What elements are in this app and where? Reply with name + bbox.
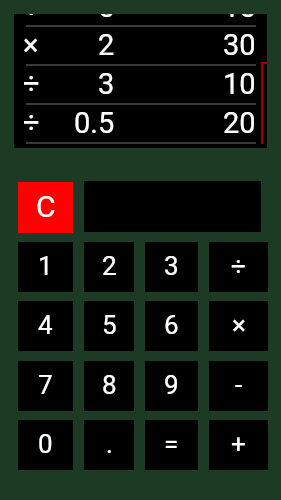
staticText: = bbox=[164, 429, 179, 459]
staticText: + bbox=[23, 14, 40, 24]
staticText: 0.5 bbox=[74, 106, 115, 140]
staticText: 30 bbox=[223, 28, 256, 62]
staticText: 5 bbox=[102, 310, 117, 340]
staticText: . bbox=[106, 429, 113, 459]
button[interactable]: 3 bbox=[145, 242, 198, 292]
button[interactable]: 5 bbox=[84, 301, 134, 351]
staticText: C bbox=[36, 189, 56, 224]
button[interactable]: 4 bbox=[18, 301, 73, 351]
staticText: 2 bbox=[98, 28, 115, 62]
button[interactable]: + bbox=[209, 420, 268, 470]
button[interactable]: 9 bbox=[145, 361, 198, 411]
button[interactable]: 2 bbox=[84, 242, 134, 292]
staticText: 15 bbox=[223, 14, 256, 24]
staticText: 2 bbox=[102, 251, 117, 281]
button[interactable]: - bbox=[209, 361, 268, 411]
staticText: ÷ bbox=[23, 67, 40, 101]
button[interactable]: 6 bbox=[145, 301, 198, 351]
button[interactable]: ÷ bbox=[209, 242, 268, 292]
button[interactable]: 8 bbox=[84, 361, 134, 411]
staticText: 20 bbox=[223, 106, 256, 140]
staticText: 3 bbox=[164, 251, 179, 281]
staticText: - bbox=[235, 370, 243, 400]
button[interactable]: = bbox=[145, 420, 198, 470]
button[interactable]: 7 bbox=[18, 361, 73, 411]
staticText: ÷ bbox=[23, 106, 40, 140]
staticText: 8 bbox=[102, 370, 117, 400]
staticText: ÷ bbox=[231, 251, 246, 281]
staticText: 9 bbox=[164, 370, 179, 400]
button[interactable]: . bbox=[84, 420, 134, 470]
staticText: 4 bbox=[38, 310, 53, 340]
staticText: 10 bbox=[223, 67, 256, 101]
staticText: 0 bbox=[38, 429, 53, 459]
staticText: 6 bbox=[164, 310, 179, 340]
staticText: 5 bbox=[98, 14, 115, 24]
staticText: + bbox=[231, 429, 246, 459]
staticText: × bbox=[23, 28, 39, 62]
button[interactable]: 1 bbox=[18, 242, 73, 292]
staticText: × bbox=[232, 310, 246, 340]
staticText: 3 bbox=[98, 67, 115, 101]
button[interactable]: 0 bbox=[18, 420, 73, 470]
button[interactable]: × bbox=[209, 301, 268, 351]
staticText: 7 bbox=[38, 370, 53, 400]
staticText: 1 bbox=[38, 251, 53, 281]
button[interactable]: C bbox=[18, 182, 73, 233]
